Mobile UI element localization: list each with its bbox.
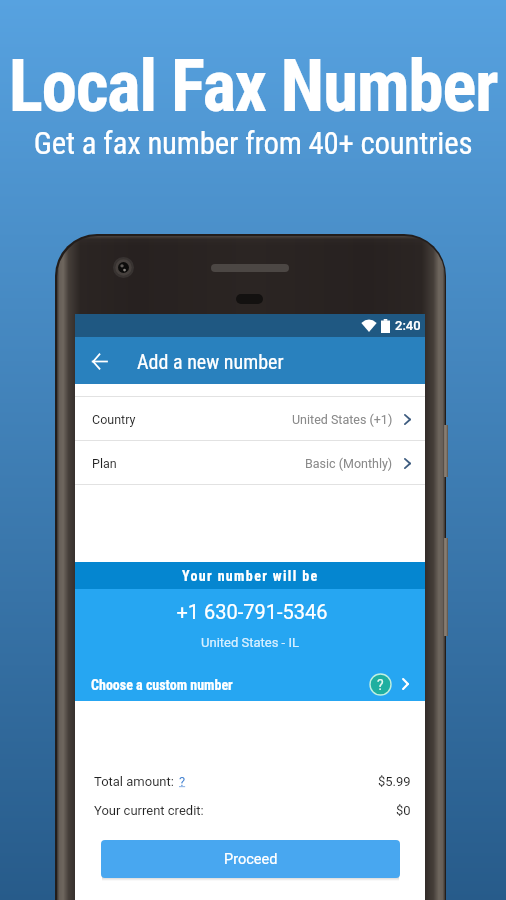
staticText: Add a new number bbox=[137, 350, 284, 373]
button[interactable]: ? bbox=[179, 774, 186, 789]
staticText: +1 630-791-5346 bbox=[77, 600, 427, 623]
button[interactable]: Proceed bbox=[101, 840, 400, 878]
staticText: United States - IL bbox=[75, 635, 425, 650]
button[interactable]: Plan bbox=[75, 441, 425, 485]
staticText: Country bbox=[92, 412, 136, 427]
staticText: Local Fax Number bbox=[0, 45, 506, 129]
staticText: 2:40 bbox=[395, 318, 421, 333]
staticText: Your current credit: bbox=[94, 803, 204, 818]
staticText: Plan bbox=[92, 456, 117, 471]
staticText: United States (+1) bbox=[292, 412, 393, 427]
button[interactable]: Country bbox=[75, 397, 425, 441]
staticText: ? bbox=[377, 677, 384, 693]
staticText: Get a fax number from 40+ countries bbox=[0, 125, 506, 161]
staticText: $5.99 bbox=[378, 774, 411, 789]
staticText: Choose a custom number bbox=[91, 677, 233, 693]
button[interactable]: Back bbox=[79, 340, 120, 381]
staticText: Basic (Monthly) bbox=[305, 456, 393, 471]
button[interactable]: Choose a custom number bbox=[75, 669, 425, 701]
staticText: ? bbox=[179, 774, 186, 789]
staticText: Your number will be bbox=[182, 568, 319, 584]
staticText: Proceed bbox=[224, 851, 278, 868]
staticText: $0 bbox=[396, 803, 411, 818]
staticText: Total amount: bbox=[94, 774, 174, 789]
